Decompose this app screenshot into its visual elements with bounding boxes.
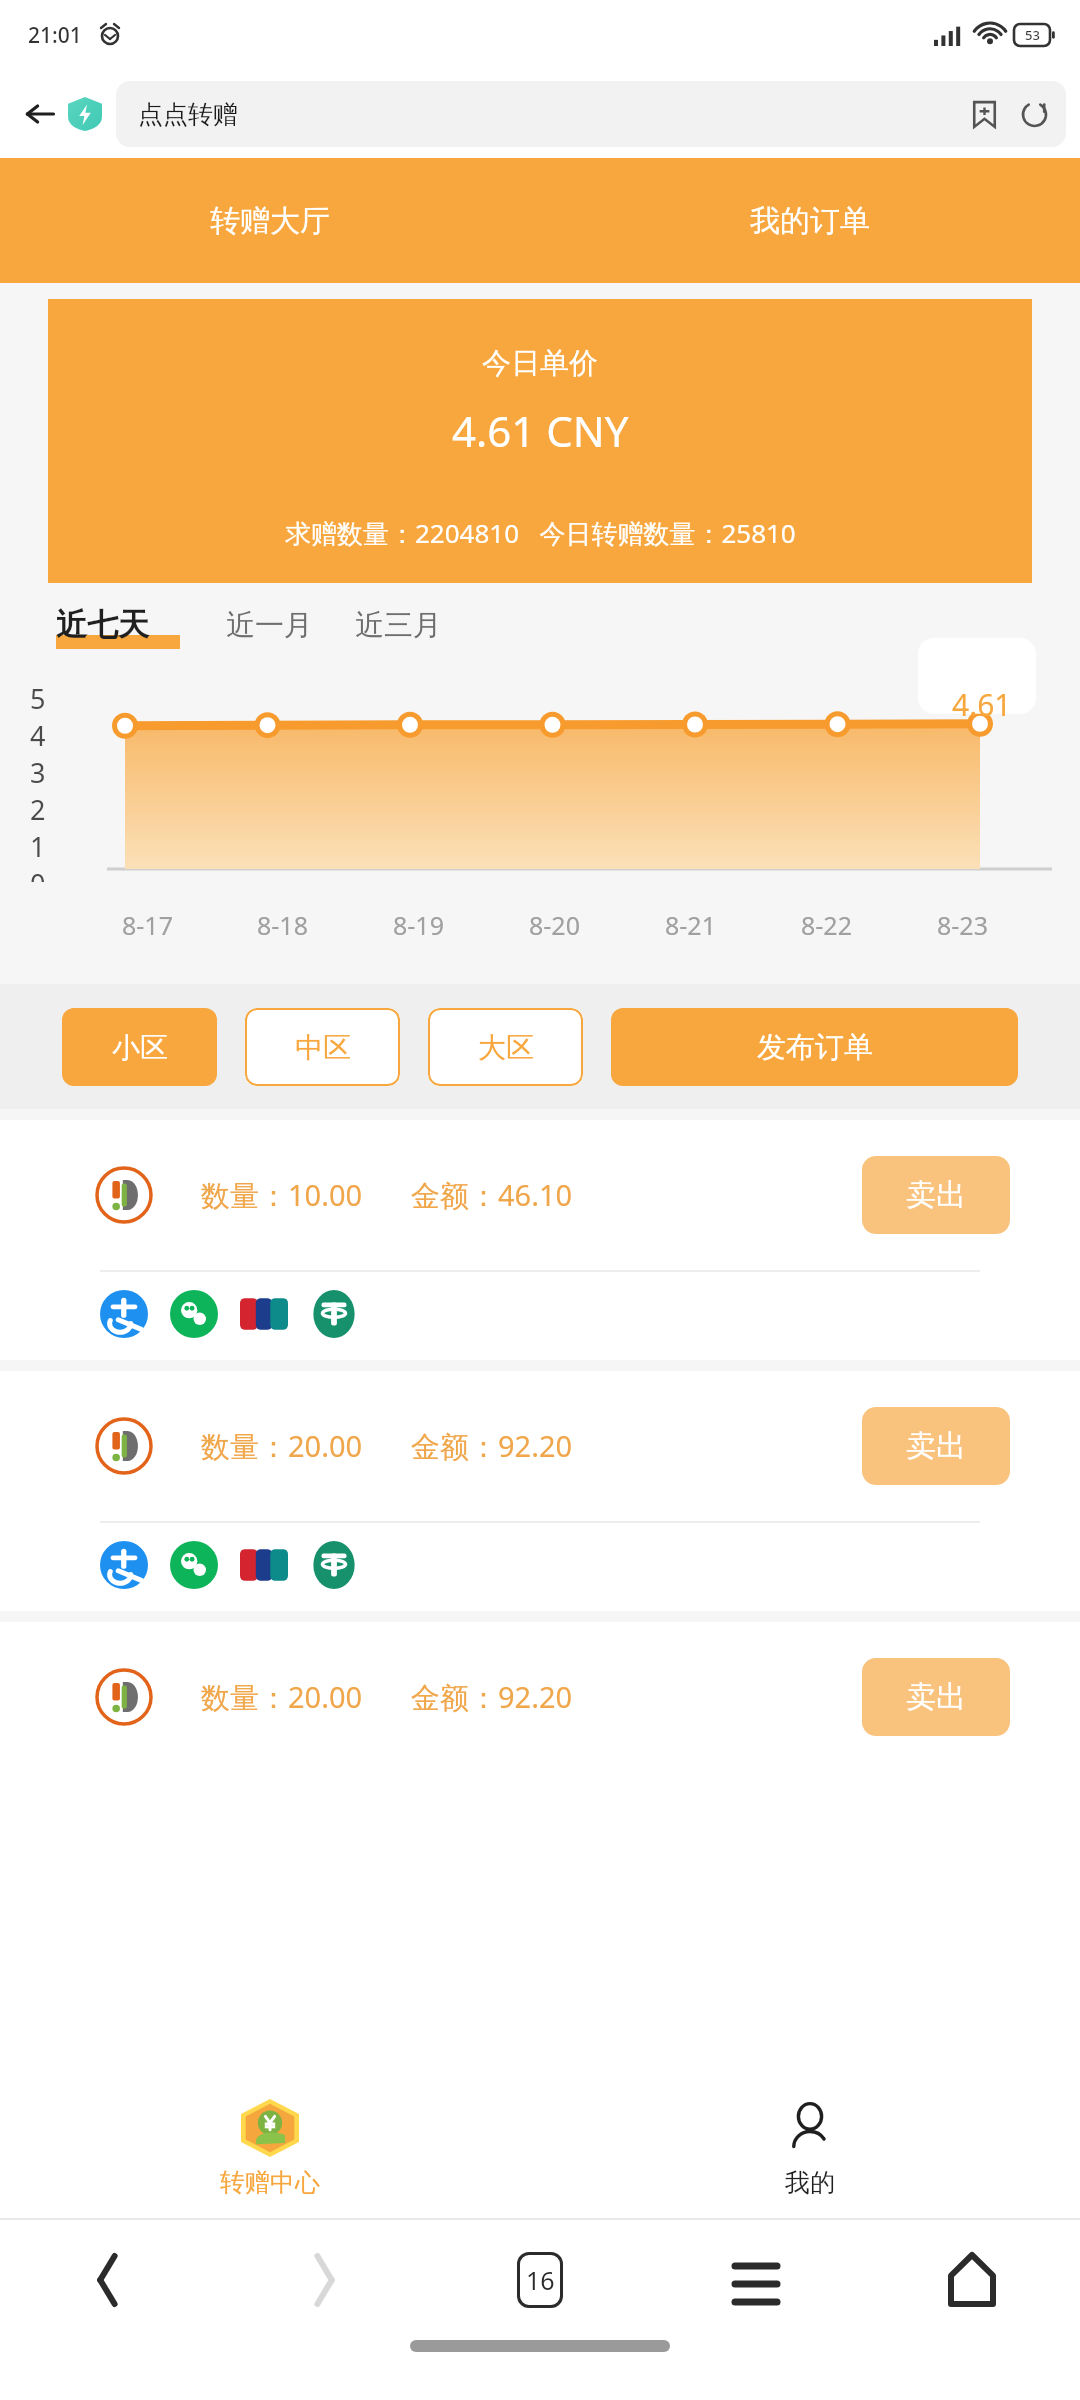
staticText: 中区 bbox=[295, 1030, 351, 1065]
button[interactable]: 数量：10.00 bbox=[0, 1120, 1080, 1270]
button[interactable]: 数量：20.00 bbox=[0, 1371, 1080, 1521]
staticText: 近一月 bbox=[226, 607, 313, 644]
staticText: 近七天 bbox=[56, 605, 149, 644]
staticText: 金额：92.20 bbox=[411, 1426, 573, 1466]
button[interactable]: Back bbox=[12, 86, 68, 142]
staticText: 转赠中心 bbox=[220, 2167, 320, 2198]
staticText: 2 bbox=[30, 791, 46, 828]
button[interactable]: 小区 bbox=[62, 1008, 217, 1086]
staticText: 4 bbox=[30, 717, 46, 754]
staticText: 数量：20.00 bbox=[201, 1677, 363, 1717]
button[interactable]: 数量：20.00 bbox=[0, 1622, 1080, 1772]
staticText: 53 bbox=[1025, 26, 1040, 44]
staticText: 金额：92.20 bbox=[411, 1677, 573, 1717]
button[interactable]: Tabs 16 bbox=[432, 2220, 648, 2340]
staticText: 8-19 bbox=[393, 908, 444, 942]
button[interactable]: 近一月 bbox=[226, 607, 313, 644]
button[interactable]: 中区 bbox=[245, 1008, 400, 1086]
staticText: 卖出 bbox=[906, 1678, 966, 1716]
staticText: 卖出 bbox=[906, 1427, 966, 1465]
staticText: 我的 bbox=[785, 2167, 835, 2198]
staticText: 近三月 bbox=[355, 607, 442, 644]
button[interactable]: 今日单价 bbox=[48, 299, 1032, 583]
staticText: 大区 bbox=[478, 1030, 534, 1065]
staticText: 8-20 bbox=[529, 908, 580, 942]
button[interactable]: 我的订单 bbox=[540, 158, 1080, 283]
staticText: 4.61 bbox=[952, 684, 1012, 725]
staticText: 数量：10.00 bbox=[201, 1175, 363, 1215]
staticText: 8-17 bbox=[122, 908, 173, 942]
button[interactable]: 我的 bbox=[540, 2078, 1080, 2218]
staticText: 4.61 CNY bbox=[452, 402, 629, 459]
staticText: 8-22 bbox=[801, 908, 852, 942]
button[interactable]: Home bbox=[864, 2220, 1080, 2340]
button[interactable]: 转赠中心 bbox=[0, 2078, 540, 2218]
button[interactable]: Menu bbox=[648, 2220, 864, 2340]
button[interactable]: 点点转赠 bbox=[116, 81, 1066, 147]
button[interactable]: Forward bbox=[216, 2220, 432, 2340]
staticText: 发布订单 bbox=[757, 1029, 873, 1066]
button[interactable]: Bookmark bbox=[958, 88, 1010, 140]
staticText: 1 bbox=[30, 828, 46, 865]
staticText: 3 bbox=[30, 754, 46, 791]
button[interactable]: Back bbox=[0, 2220, 216, 2340]
staticText: 8-23 bbox=[937, 908, 988, 942]
staticText: 点点转赠 bbox=[138, 99, 958, 130]
staticText: 5 bbox=[30, 680, 46, 717]
staticText: 金额：46.10 bbox=[411, 1175, 573, 1215]
button[interactable]: 卖出 bbox=[862, 1407, 1010, 1485]
button[interactable]: Refresh bbox=[1010, 86, 1058, 142]
button[interactable]: 近七天 bbox=[56, 605, 180, 644]
button[interactable]: 近三月 bbox=[355, 607, 442, 644]
staticText: 8-21 bbox=[665, 908, 716, 942]
staticText: 数量：20.00 bbox=[201, 1426, 363, 1466]
staticText: 卖出 bbox=[906, 1176, 966, 1214]
button[interactable]: 卖出 bbox=[862, 1156, 1010, 1234]
staticText: 小区 bbox=[112, 1030, 168, 1065]
staticText: 求赠数量：2204810 今日转赠数量：25810 bbox=[285, 515, 796, 551]
staticText: 转赠大厅 bbox=[210, 202, 330, 240]
button[interactable]: 发布订单 bbox=[611, 1008, 1018, 1086]
staticText: 今日单价 bbox=[482, 345, 598, 382]
staticText: 8-18 bbox=[257, 908, 308, 942]
staticText: 0 bbox=[30, 865, 46, 882]
button[interactable]: 大区 bbox=[428, 1008, 583, 1086]
button[interactable]: 卖出 bbox=[862, 1658, 1010, 1736]
staticText: 我的订单 bbox=[750, 202, 870, 240]
button[interactable]: 转赠大厅 bbox=[0, 158, 540, 283]
staticText: 16 bbox=[526, 2263, 555, 2297]
staticText: 21:01 bbox=[28, 21, 82, 50]
